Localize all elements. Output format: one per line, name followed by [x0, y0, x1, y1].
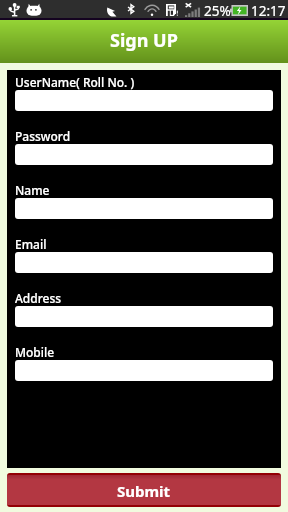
staticText: 25% — [204, 2, 231, 20]
button[interactable]: Submit — [7, 475, 281, 505]
staticText: Submit — [117, 481, 171, 501]
staticText: Password — [15, 128, 71, 144]
staticText: 12:17 — [251, 2, 286, 20]
staticText: Email — [15, 236, 47, 252]
staticText: Sign UP — [110, 28, 178, 53]
button[interactable]: UserName( Roll No. ) — [15, 90, 273, 111]
button[interactable]: Mobile — [15, 360, 273, 381]
staticText: UserName( Roll No. ) — [15, 74, 135, 90]
staticText: Name — [15, 182, 50, 198]
staticText: Address — [15, 290, 62, 306]
button[interactable]: Name — [15, 198, 273, 219]
staticText: Mobile — [15, 344, 55, 360]
button[interactable]: Password — [15, 144, 273, 165]
button[interactable]: Address — [15, 306, 273, 327]
button[interactable]: Email — [15, 252, 273, 273]
